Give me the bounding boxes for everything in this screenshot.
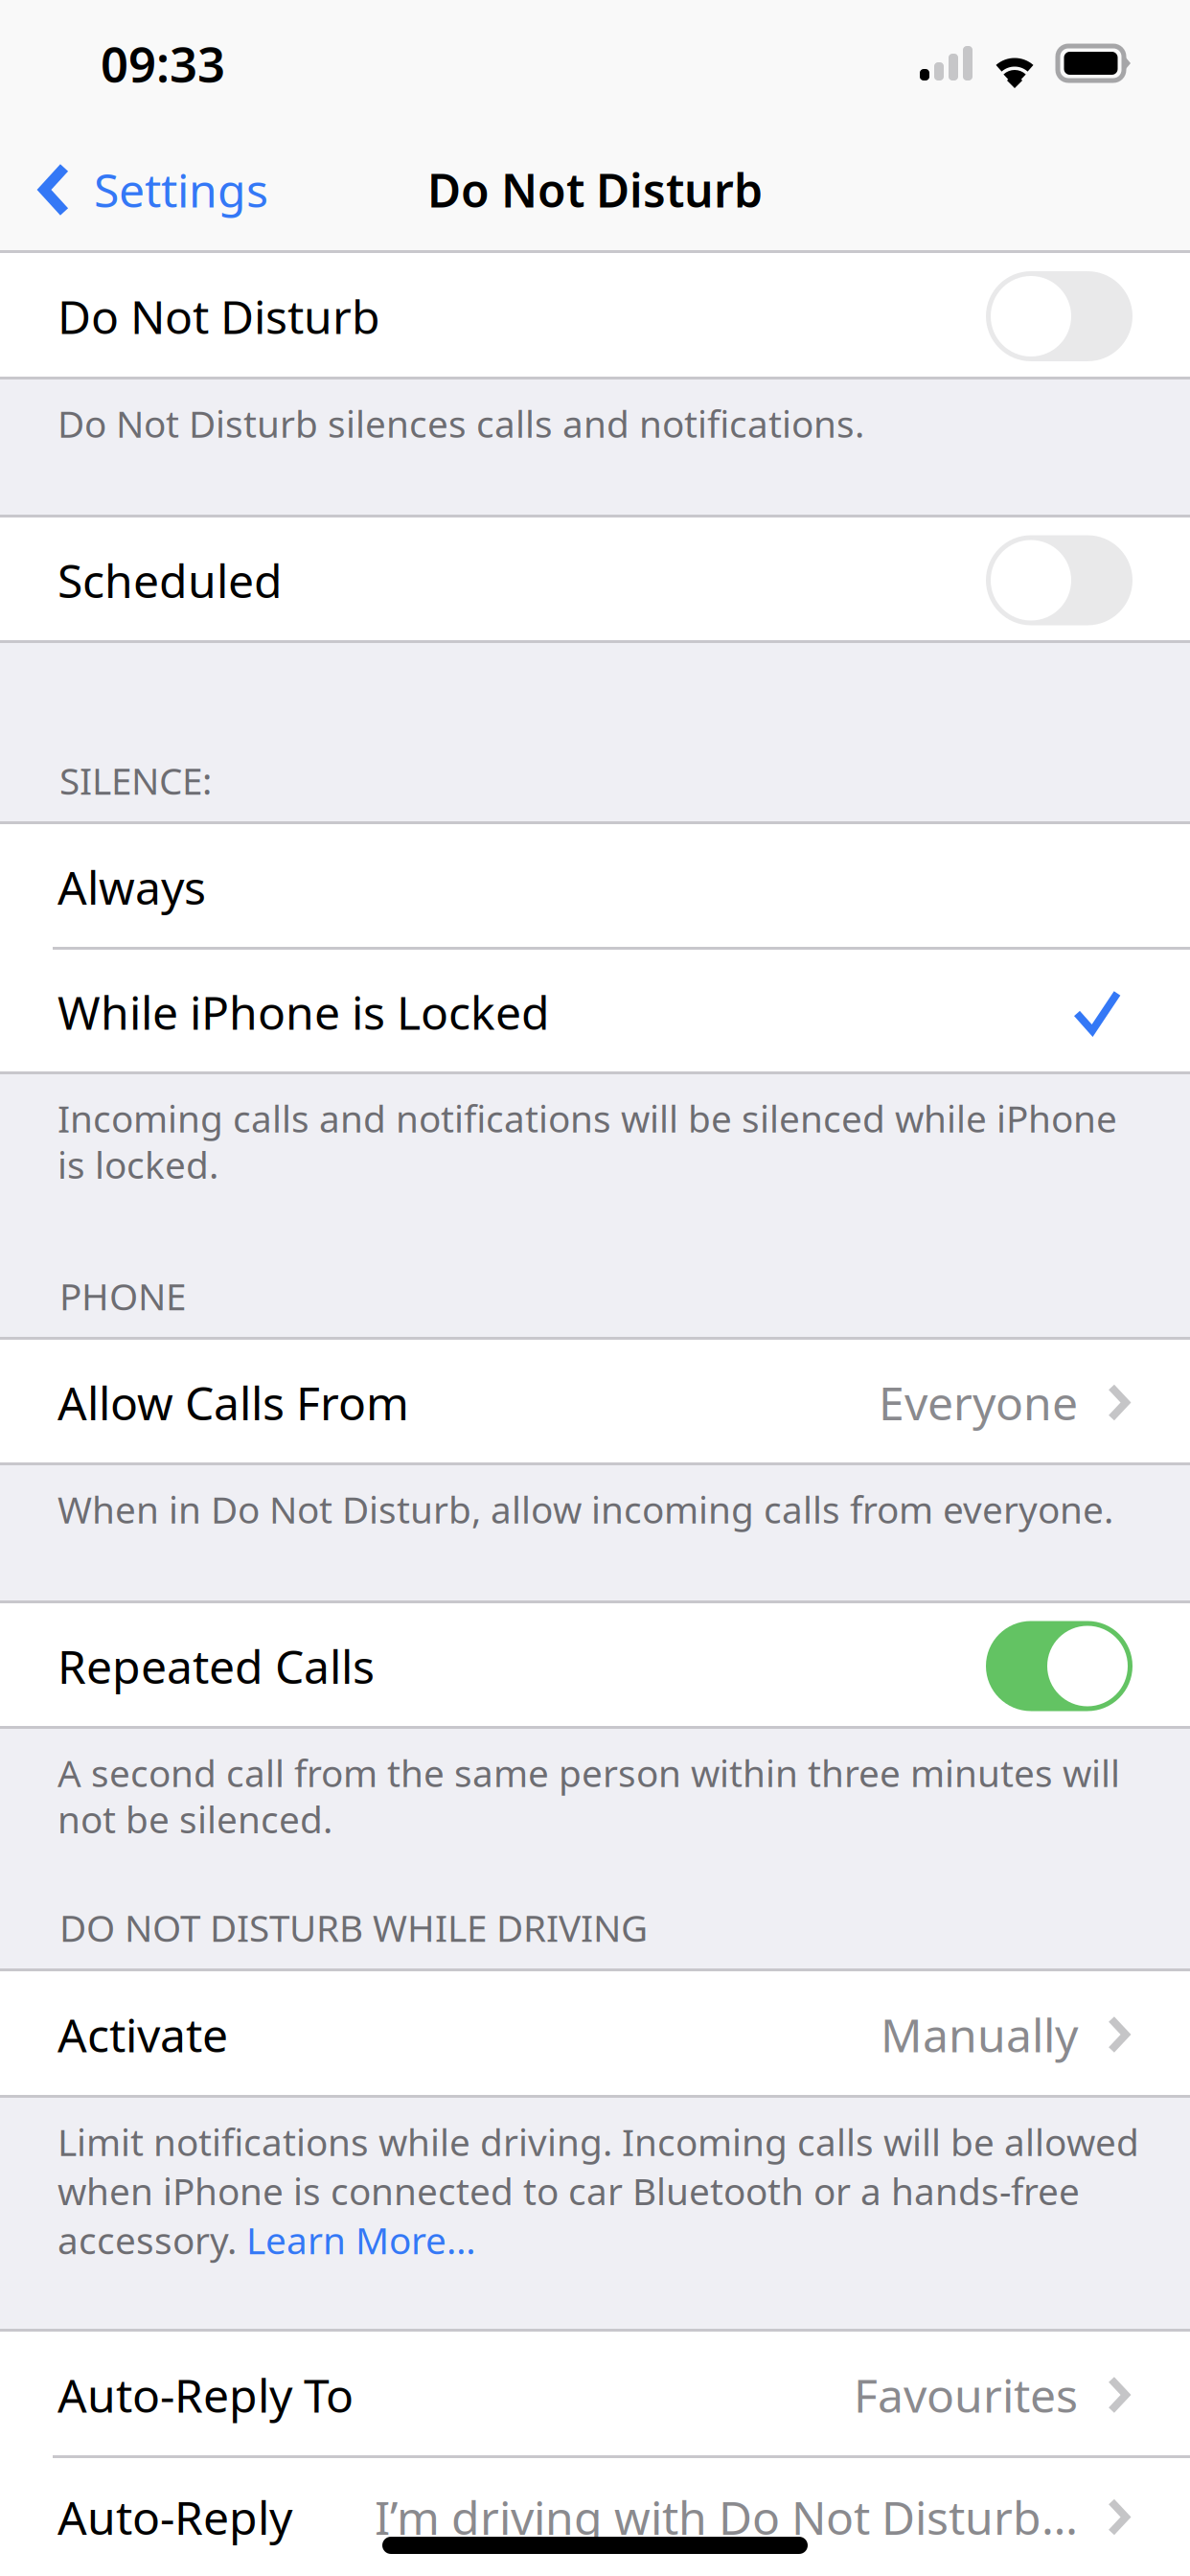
staticText: Auto-Reply To	[57, 2364, 354, 2425]
button[interactable]: Auto-Reply	[0, 2458, 1190, 2576]
button[interactable]: Activate	[0, 1971, 1190, 2098]
staticText: A second call from the same person withi…	[57, 1748, 1120, 1844]
staticText: Auto-Reply	[57, 2486, 292, 2548]
staticText: Repeated Calls	[57, 1635, 375, 1697]
button[interactable]: Allow Calls From	[0, 1340, 1190, 1465]
staticText: Do Not Disturb silences calls and notifi…	[57, 399, 864, 448]
staticText: Manually	[881, 2004, 1078, 2065]
button[interactable]: Settings	[0, 126, 291, 253]
staticText: Allow Calls From	[57, 1372, 409, 1433]
staticText: when iPhone is connected to car Bluetoot…	[57, 2166, 1080, 2215]
staticText: I’m driving with Do Not Disturb…	[375, 2486, 1078, 2548]
staticText: While iPhone is Locked	[57, 981, 550, 1042]
staticText: Do Not Disturb	[427, 159, 763, 220]
button[interactable]: While iPhone is Locked	[0, 950, 1190, 1074]
staticText: Do Not Disturb	[57, 286, 380, 347]
staticText: Everyone	[879, 1372, 1078, 1433]
staticText: 09:33	[101, 31, 225, 96]
button[interactable]: Auto-Reply To	[0, 2332, 1190, 2458]
staticText: Settings	[94, 159, 268, 220]
staticText: accessory.	[57, 2215, 246, 2265]
button[interactable]: Repeated Calls	[0, 1603, 1190, 1729]
staticText: Activate	[57, 2004, 228, 2065]
staticText: Favourites	[854, 2364, 1078, 2425]
staticText: DO NOT DISTURB WHILE DRIVING	[59, 1903, 648, 1952]
button[interactable]: Learn More…	[246, 2215, 476, 2265]
staticText: Learn More…	[246, 2215, 476, 2265]
button[interactable]: Do Not Disturb	[0, 253, 1190, 379]
staticText: When in Do Not Disturb, allow incoming c…	[57, 1484, 1113, 1534]
staticText: Scheduled	[57, 550, 283, 611]
staticText: Limit notifications while driving. Incom…	[57, 2117, 1139, 2166]
button[interactable]: Scheduled	[0, 517, 1190, 643]
staticText: SILENCE:	[59, 756, 212, 805]
staticText: Always	[57, 856, 206, 917]
staticText: PHONE	[59, 1271, 186, 1321]
staticText: Incoming calls and notifications will be…	[57, 1093, 1117, 1189]
button[interactable]: Always	[0, 824, 1190, 950]
